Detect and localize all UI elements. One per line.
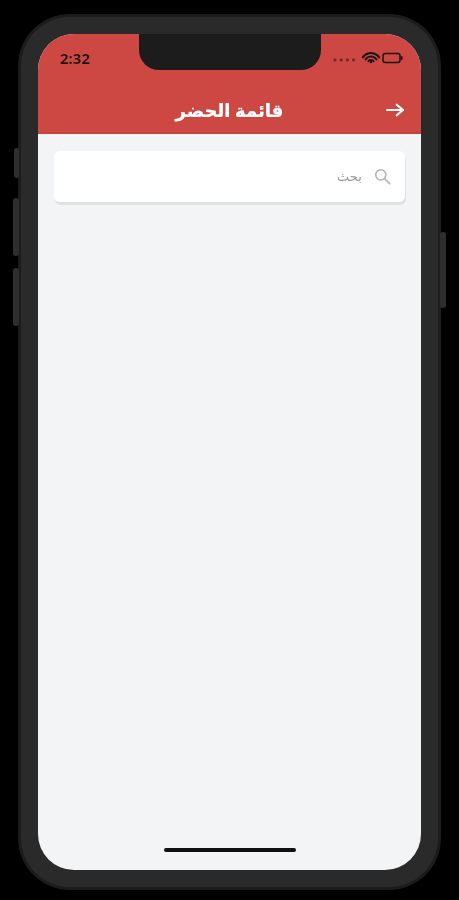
button[interactable]: بحث bbox=[54, 151, 405, 202]
button[interactable]: Forward bbox=[375, 90, 415, 130]
staticText: بحث bbox=[337, 169, 362, 184]
staticText: قائمة الحضر bbox=[38, 98, 421, 123]
staticText: 2:32 bbox=[60, 48, 90, 68]
